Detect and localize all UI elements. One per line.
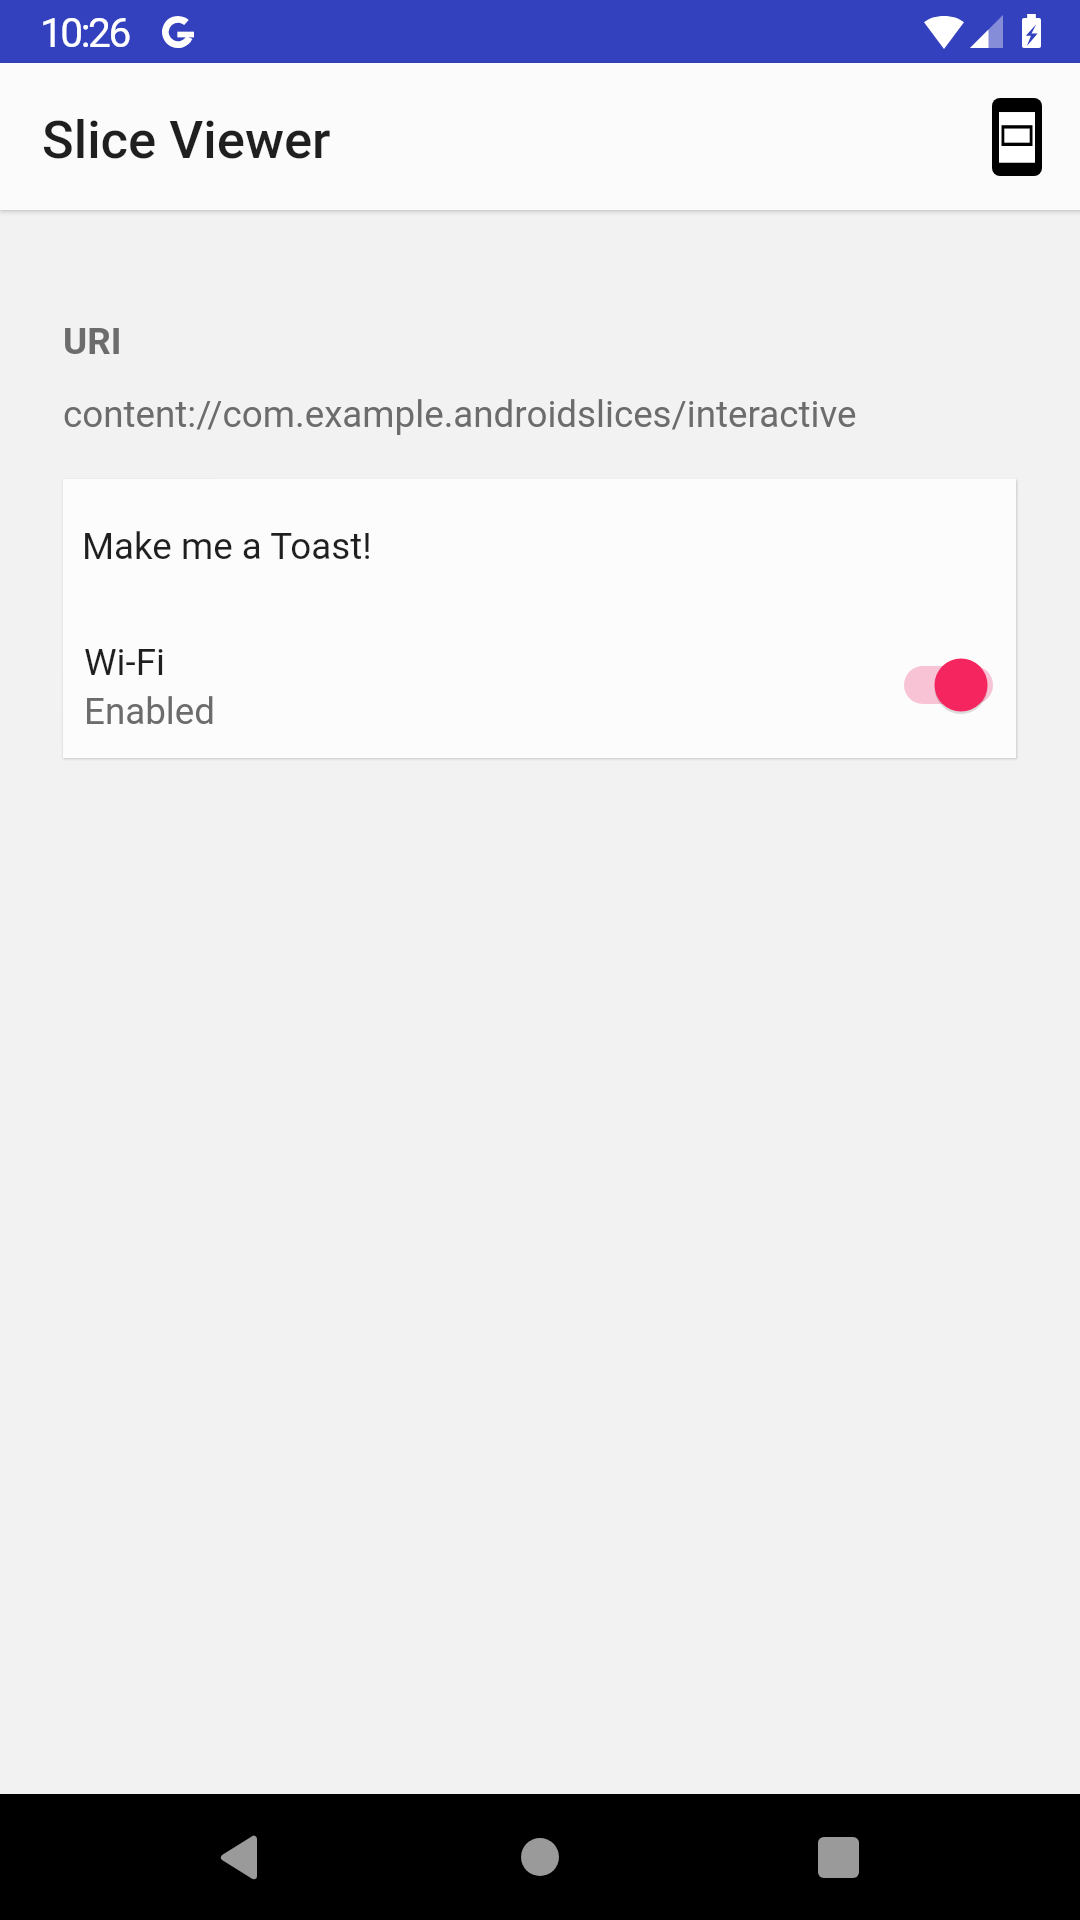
staticText: Wi-Fi <box>84 641 165 684</box>
staticText: Slice Viewer <box>42 109 331 171</box>
staticText: Make me a Toast! <box>82 525 372 568</box>
button[interactable]: Recents <box>778 1794 898 1920</box>
button[interactable]: Make me a Toast! <box>63 479 1016 605</box>
staticText: 10:26 <box>40 9 129 57</box>
button[interactable]: Home <box>480 1794 600 1920</box>
button[interactable]: Wi-Fi toggle <box>890 630 1000 740</box>
staticText: URI <box>63 320 122 363</box>
staticText: content://com.example.androidslices/inte… <box>63 393 857 436</box>
button[interactable]: Wi-Fi <box>63 605 1016 758</box>
button[interactable]: Show slice in phone <box>962 82 1072 192</box>
button[interactable]: Back <box>178 1794 298 1920</box>
staticText: Enabled <box>84 690 215 733</box>
